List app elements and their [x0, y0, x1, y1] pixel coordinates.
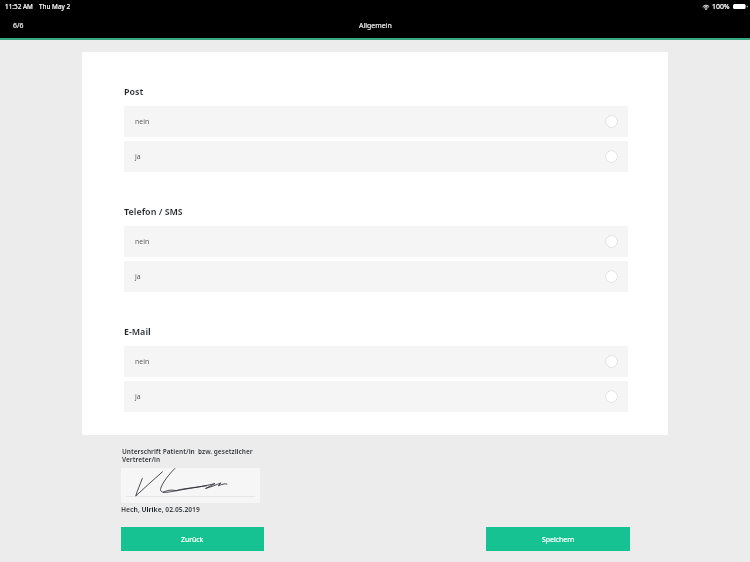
staticText: Telefon / SMS: [124, 206, 183, 218]
button[interactable]: ja: [124, 141, 628, 172]
button[interactable]: nein: [124, 346, 628, 377]
staticText: 100%: [712, 2, 730, 11]
button[interactable]: ja: [124, 261, 628, 292]
staticText: Speichern: [542, 535, 575, 544]
button[interactable]: Zurück: [121, 527, 264, 551]
button[interactable]: Speichern: [486, 527, 630, 551]
staticText: Zurück: [181, 535, 204, 544]
staticText: Hech, Ulrike, 02.05.2019: [121, 505, 200, 514]
staticText: 11:52 AM: [5, 2, 33, 11]
staticText: Unterschrift Patient/in bzw. gesetzliche…: [122, 447, 253, 456]
staticText: Thu May 2: [39, 2, 71, 11]
staticText: ja: [135, 152, 141, 161]
staticText: Vertreter/in: [122, 455, 161, 464]
button[interactable]: 6/6: [1, 16, 35, 34]
other: Battery full: [733, 4, 747, 9]
staticText: nein: [135, 117, 150, 126]
staticText: nein: [135, 237, 150, 246]
staticText: nein: [135, 357, 150, 366]
button[interactable]: nein: [124, 226, 628, 257]
staticText: Allgemein: [359, 21, 392, 30]
staticText: ja: [135, 392, 141, 401]
other: Wi-Fi: [702, 4, 710, 10]
button[interactable]: Signature field: [121, 468, 260, 503]
staticText: E-Mail: [124, 326, 151, 338]
staticText: Post: [124, 86, 144, 98]
button[interactable]: ja: [124, 381, 628, 412]
staticText: 6/6: [13, 21, 24, 30]
staticText: ja: [135, 272, 141, 281]
button[interactable]: nein: [124, 106, 628, 137]
